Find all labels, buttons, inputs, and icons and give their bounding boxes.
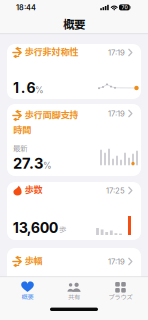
staticText: 13,600 bbox=[13, 219, 58, 236]
staticText: 1.6 bbox=[13, 79, 36, 96]
staticText: 概要 bbox=[63, 17, 85, 34]
staticText: 時間 bbox=[13, 124, 31, 137]
staticText: 歩行両脚支持 bbox=[24, 109, 78, 122]
staticText: 概要 bbox=[21, 293, 33, 302]
button[interactable]: 概要 bbox=[4, 278, 50, 304]
button[interactable]: 歩行両脚支持 bbox=[7, 104, 141, 176]
button[interactable]: 歩行非対称性 bbox=[7, 44, 141, 99]
staticText: 17:19 bbox=[108, 257, 125, 266]
staticText: 歩数 bbox=[24, 184, 42, 197]
button[interactable]: 歩幅 bbox=[7, 248, 141, 286]
staticText: 17:25 bbox=[106, 186, 125, 195]
staticText: 70 bbox=[121, 4, 127, 10]
staticText: 歩 bbox=[59, 224, 66, 236]
staticText: 歩行非対称性 bbox=[24, 46, 78, 59]
staticText: 最新 bbox=[13, 143, 27, 155]
staticText: % bbox=[35, 85, 44, 95]
staticText: ブラウズ bbox=[108, 293, 132, 302]
staticText: 18:44 bbox=[16, 3, 36, 12]
staticText: 共有 bbox=[68, 293, 80, 302]
staticText: 27.3 bbox=[13, 155, 43, 172]
staticText: 歩幅 bbox=[24, 255, 42, 268]
button[interactable]: ブラウズ bbox=[97, 278, 143, 304]
staticText: 17:19 bbox=[108, 109, 125, 118]
button[interactable]: 共有 bbox=[51, 278, 97, 304]
button[interactable]: 歩数 bbox=[7, 182, 141, 240]
staticText: % bbox=[43, 160, 52, 171]
staticText: 17:19 bbox=[108, 48, 125, 57]
